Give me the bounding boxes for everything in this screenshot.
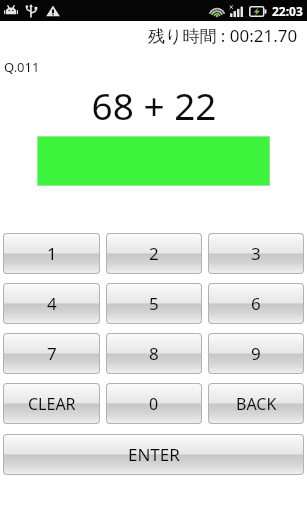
staticText: 9	[251, 342, 261, 365]
staticText: Q.011	[4, 58, 40, 76]
staticText: 68 + 22	[91, 80, 217, 128]
button[interactable]: BACK	[209, 384, 303, 423]
button[interactable]: 0	[107, 384, 201, 423]
staticText: 2	[149, 242, 159, 265]
button[interactable]: 4	[4, 284, 99, 323]
button[interactable]: 2	[107, 234, 201, 273]
button[interactable]: 8	[107, 334, 201, 373]
staticText: 3	[251, 242, 261, 265]
button[interactable]: 1	[4, 234, 99, 273]
button[interactable]: ENTER	[4, 435, 303, 474]
button[interactable]: CLEAR	[4, 384, 99, 423]
staticText: ENTER	[128, 443, 180, 466]
button[interactable]: 7	[4, 334, 99, 373]
staticText: BACK	[236, 393, 277, 415]
button[interactable]: 3	[209, 234, 303, 273]
button[interactable]: 6	[209, 284, 303, 323]
button[interactable]: 9	[209, 334, 303, 373]
staticText: 残り時間 : 00:21.70	[148, 24, 298, 46]
button[interactable]: 5	[107, 284, 201, 323]
staticText: 6	[251, 292, 261, 315]
staticText: 22:03	[272, 3, 303, 19]
staticText: 7	[47, 342, 57, 365]
staticText: 0	[149, 393, 159, 415]
staticText: 4	[47, 292, 57, 315]
staticText: 8	[149, 342, 159, 365]
staticText: 5	[149, 292, 159, 315]
staticText: CLEAR	[28, 393, 76, 415]
staticText: 1	[47, 242, 57, 265]
